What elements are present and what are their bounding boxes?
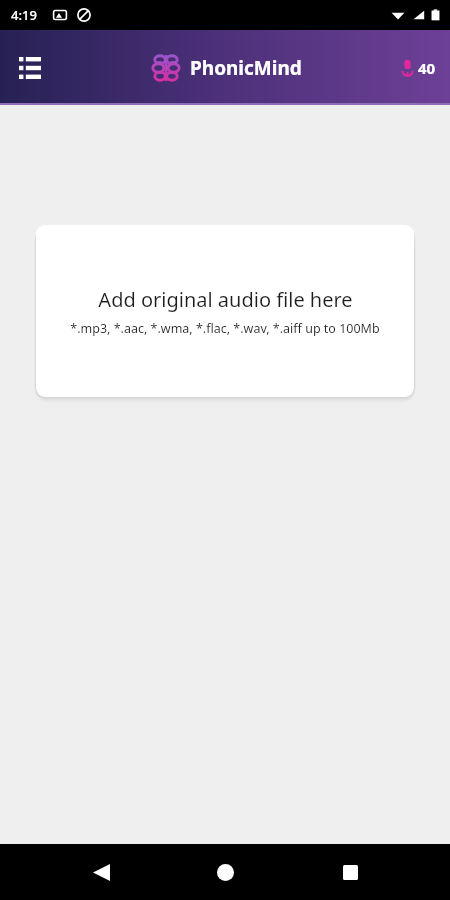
- staticText: *.mp3, *.aac, *.wma, *.flac, *.wav, *.ai…: [70, 320, 380, 337]
- button[interactable]: 40: [398, 54, 440, 82]
- button[interactable]: Home: [201, 848, 249, 896]
- staticText: 40: [418, 58, 436, 78]
- staticText: 4:19: [11, 6, 37, 24]
- button[interactable]: Back: [77, 848, 125, 896]
- staticText: PhonicMind: [190, 55, 302, 81]
- button[interactable]: Menu: [8, 46, 52, 90]
- button[interactable]: Recent apps: [326, 848, 374, 896]
- button[interactable]: Add original audio file here: [36, 225, 414, 397]
- staticText: Add original audio file here: [98, 286, 353, 313]
